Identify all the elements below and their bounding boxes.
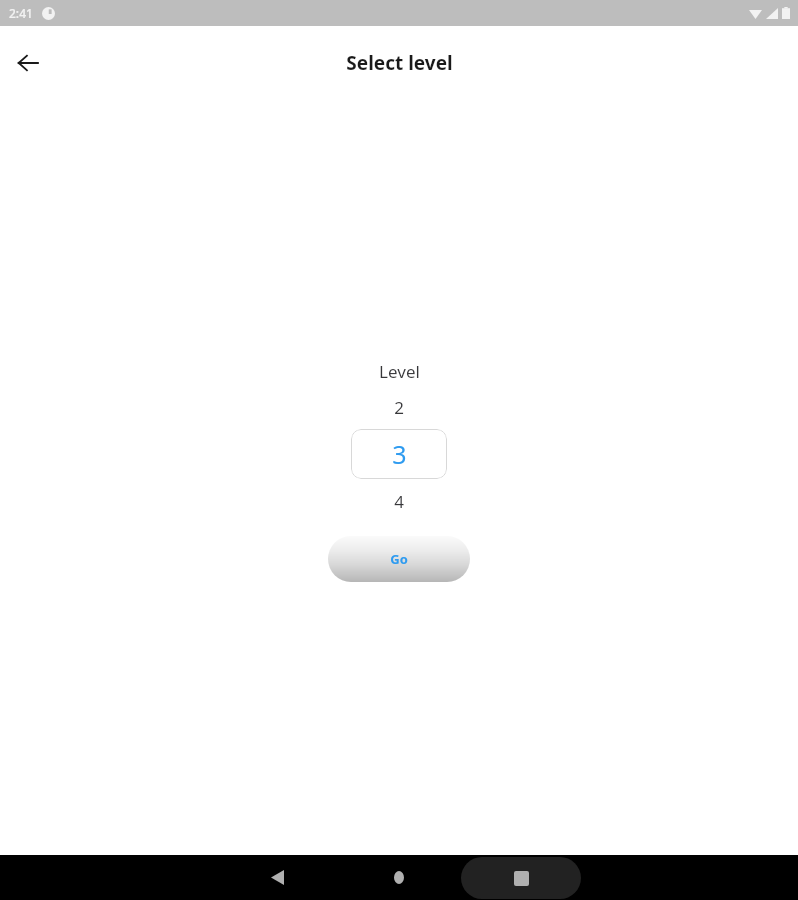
staticText: 4 [394,490,404,513]
staticText: Select level [346,50,453,76]
button[interactable]: Back [4,39,52,87]
staticText: 3 [392,437,407,471]
button[interactable]: 3 [351,429,447,479]
button[interactable]: 4 [351,489,447,513]
staticText: 2 [394,396,404,419]
button[interactable]: 2 [351,395,447,419]
button[interactable]: Home [375,855,423,900]
button[interactable]: Recents [461,857,581,899]
staticText: Go [390,550,408,568]
button[interactable]: Back [253,855,301,900]
staticText: 2:41 [9,5,33,21]
button[interactable]: Go [328,536,470,582]
staticText: Level [379,360,420,383]
